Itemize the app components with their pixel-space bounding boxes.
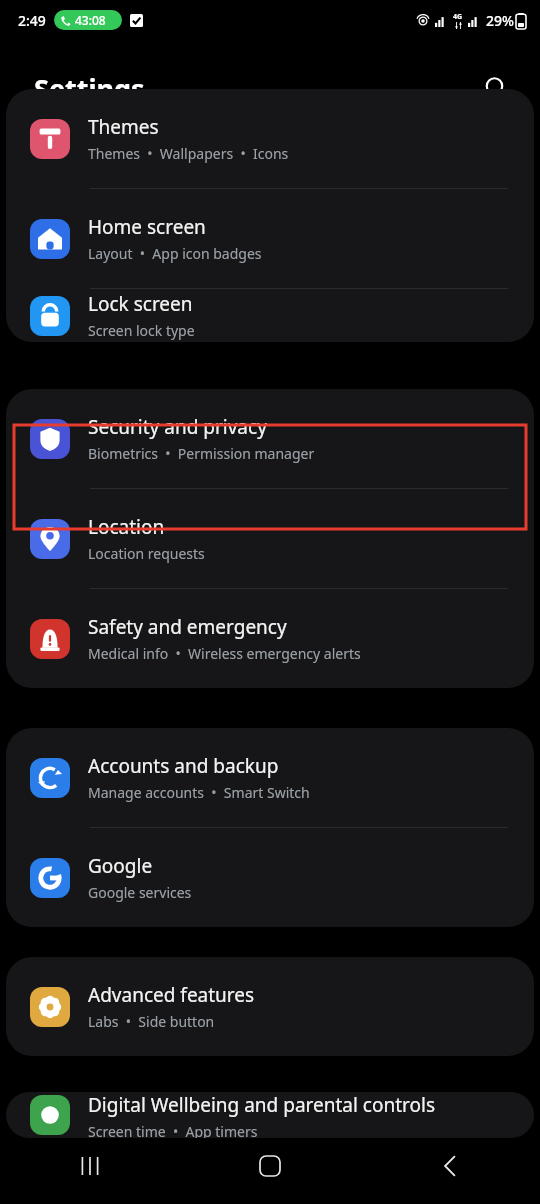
button[interactable]: Google	[6, 828, 534, 927]
staticText: Screen lock type	[88, 321, 195, 340]
staticText: 43:08	[75, 12, 106, 28]
staticText: Themes • Wallpapers • Icons	[88, 144, 289, 163]
staticText: 29%	[486, 11, 514, 30]
staticText: Safety and emergency	[88, 614, 287, 640]
button[interactable]: Themes	[6, 89, 534, 188]
staticText: 4G	[453, 12, 463, 22]
button[interactable]: Recent apps	[62, 1138, 118, 1194]
button[interactable]: Search	[474, 66, 518, 110]
staticText: Biometrics • Permission manager	[88, 444, 315, 463]
staticText: Home screen	[88, 214, 206, 240]
button[interactable]: Lock screen	[6, 289, 534, 342]
staticText: Labs • Side button	[88, 1012, 215, 1031]
button[interactable]: Security and privacy	[6, 389, 534, 488]
button[interactable]: Home screen	[6, 189, 534, 288]
staticText: 2:49	[18, 11, 46, 30]
staticText: Settings	[34, 70, 145, 107]
staticText: Security and privacy	[88, 414, 267, 440]
staticText: Location requests	[88, 544, 205, 563]
button[interactable]: Back	[422, 1138, 478, 1194]
button[interactable]: Advanced features	[6, 957, 534, 1056]
staticText: Google	[88, 853, 153, 879]
staticText: Themes	[88, 114, 159, 140]
staticText: Lock screen	[88, 291, 193, 317]
button[interactable]: Safety and emergency	[6, 589, 534, 688]
button[interactable]: Location	[6, 489, 534, 588]
button[interactable]: Digital Wellbeing and parental controls	[6, 1092, 534, 1138]
staticText: Accounts and backup	[88, 753, 279, 779]
button[interactable]: Home	[242, 1138, 298, 1194]
staticText: Google services	[88, 883, 192, 902]
staticText: Screen time • App timers	[88, 1122, 258, 1138]
staticText: Location	[88, 514, 165, 540]
button[interactable]: Accounts and backup	[6, 728, 534, 827]
staticText: Layout • App icon badges	[88, 244, 262, 263]
staticText: Manage accounts • Smart Switch	[88, 783, 310, 802]
staticText: Advanced features	[88, 982, 255, 1008]
staticText: Medical info • Wireless emergency alerts	[88, 644, 361, 663]
staticText: Digital Wellbeing and parental controls	[88, 1092, 436, 1118]
